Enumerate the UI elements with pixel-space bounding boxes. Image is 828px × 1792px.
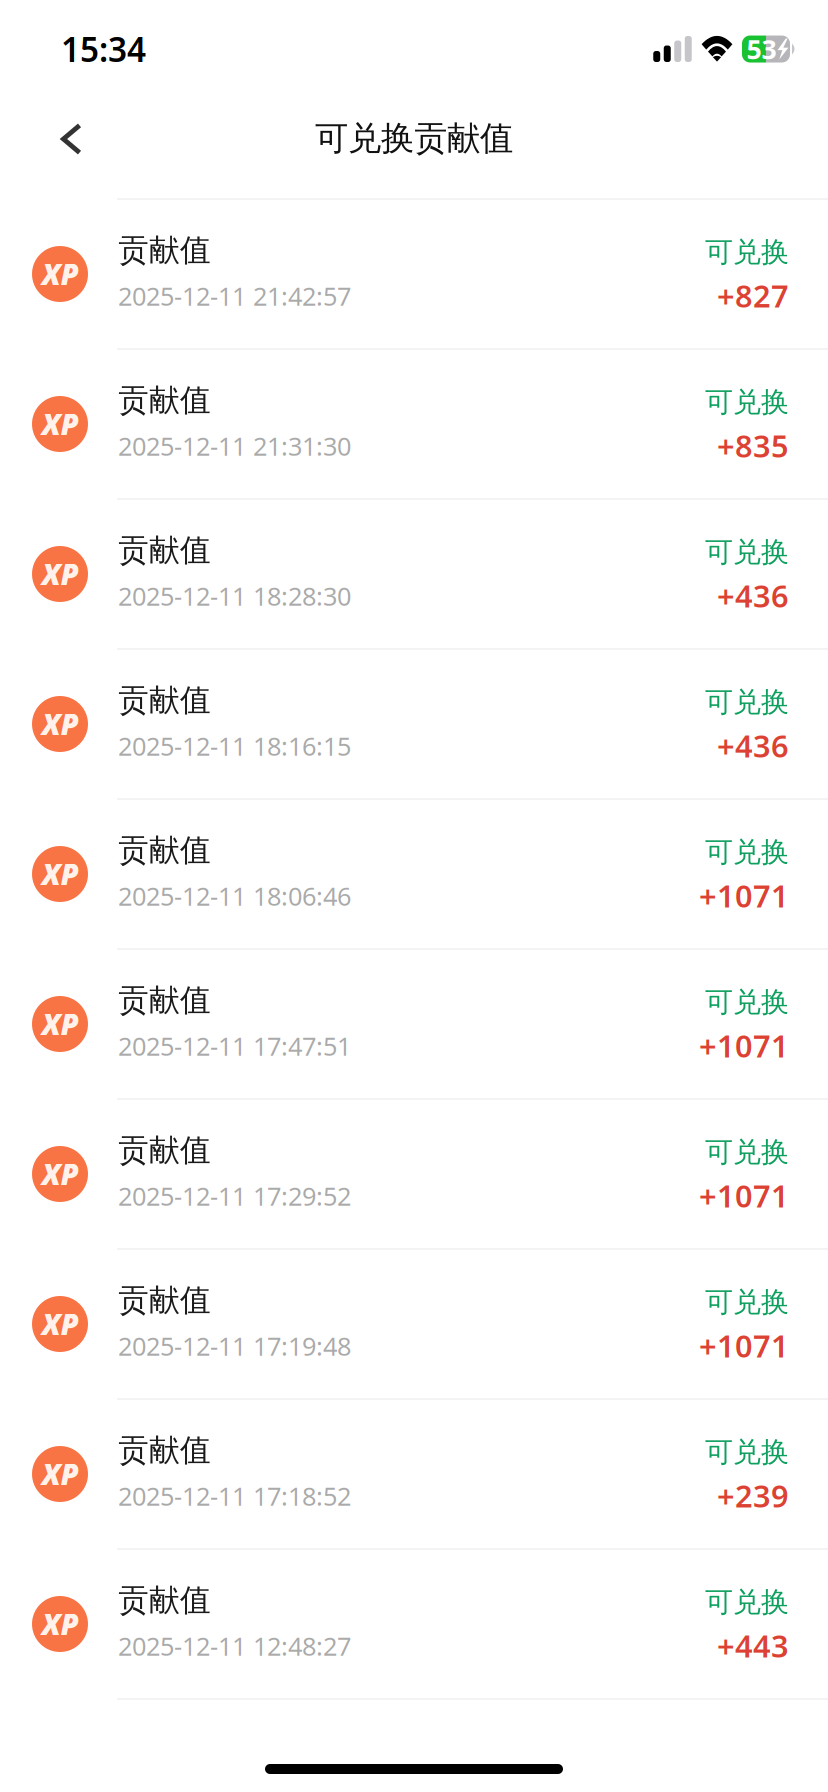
button[interactable]: XP: [0, 1550, 828, 1698]
button[interactable]: 返回: [35, 98, 108, 177]
staticText: 53: [746, 31, 776, 67]
staticText: 贡献值: [118, 1131, 211, 1169]
staticText: +835: [717, 425, 789, 466]
staticText: 2025-12-11 17:29:52: [118, 1179, 351, 1213]
staticText: 15:34: [61, 27, 146, 71]
staticText: 2025-12-11 18:06:46: [118, 879, 351, 913]
staticText: XP: [41, 1004, 78, 1043]
staticText: 可兑换贡献值: [315, 118, 513, 159]
staticText: 贡献值: [118, 831, 211, 869]
staticText: XP: [41, 1154, 78, 1193]
button[interactable]: XP: [0, 650, 828, 798]
staticText: 贡献值: [118, 1581, 211, 1619]
staticText: XP: [41, 404, 78, 443]
staticText: +436: [717, 575, 789, 616]
staticText: 可兑换: [705, 1135, 789, 1169]
staticText: 贡献值: [118, 231, 211, 269]
staticText: XP: [41, 254, 78, 293]
staticText: 2025-12-11 21:42:57: [118, 279, 351, 313]
staticText: +1071: [699, 875, 789, 916]
staticText: 可兑换: [705, 1585, 789, 1619]
staticText: 贡献值: [118, 1281, 211, 1319]
staticText: 贡献值: [118, 681, 211, 719]
button[interactable]: XP: [0, 500, 828, 648]
staticText: 2025-12-11 17:18:52: [118, 1479, 351, 1513]
button[interactable]: XP: [0, 350, 828, 498]
staticText: 可兑换: [705, 385, 789, 419]
staticText: XP: [41, 1604, 78, 1643]
staticText: XP: [41, 1304, 78, 1343]
button[interactable]: XP: [0, 950, 828, 1098]
staticText: 可兑换: [705, 535, 789, 569]
staticText: +443: [717, 1625, 789, 1666]
staticText: 可兑换: [705, 685, 789, 719]
staticText: 可兑换: [705, 835, 789, 869]
staticText: 可兑换: [705, 1435, 789, 1469]
button[interactable]: XP: [0, 1400, 828, 1548]
staticText: 2025-12-11 18:28:30: [118, 579, 351, 613]
staticText: +436: [717, 725, 789, 766]
staticText: 贡献值: [118, 531, 211, 569]
staticText: XP: [41, 854, 78, 893]
staticText: 2025-12-11 18:16:15: [118, 729, 351, 763]
staticText: 贡献值: [118, 981, 211, 1019]
staticText: +827: [717, 275, 789, 316]
button[interactable]: XP: [0, 200, 828, 348]
staticText: +239: [717, 1475, 789, 1516]
staticText: XP: [41, 1454, 78, 1493]
staticText: 可兑换: [705, 235, 789, 269]
staticText: +1071: [699, 1175, 789, 1216]
staticText: 2025-12-11 12:48:27: [118, 1629, 351, 1663]
staticText: +1071: [699, 1325, 789, 1366]
button[interactable]: XP: [0, 800, 828, 948]
staticText: 可兑换: [705, 1285, 789, 1319]
staticText: 2025-12-11 17:19:48: [118, 1329, 351, 1363]
button[interactable]: XP: [0, 1100, 828, 1248]
staticText: +1071: [699, 1025, 789, 1066]
staticText: XP: [41, 554, 78, 593]
staticText: 贡献值: [118, 381, 211, 419]
button[interactable]: XP: [0, 1250, 828, 1398]
staticText: 可兑换: [705, 985, 789, 1019]
staticText: XP: [41, 704, 78, 743]
staticText: 2025-12-11 21:31:30: [118, 429, 351, 463]
staticText: 贡献值: [118, 1431, 211, 1469]
staticText: 2025-12-11 17:47:51: [118, 1029, 351, 1063]
